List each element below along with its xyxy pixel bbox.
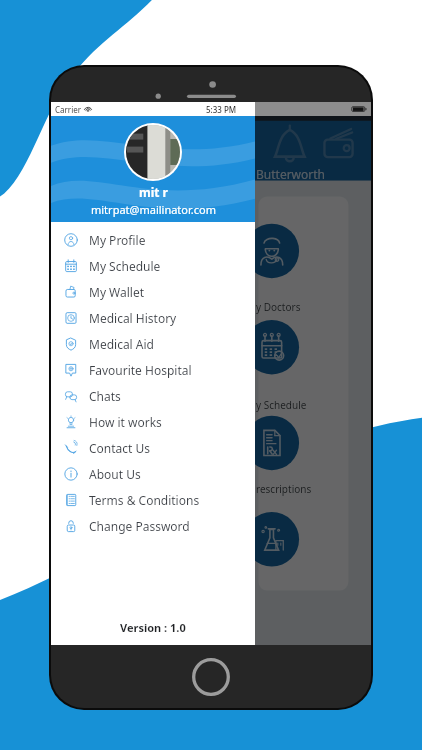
button[interactable]: Profile photo [126,125,180,179]
staticText: y Schedule [256,398,307,412]
staticText: Terms & Conditions [89,492,200,508]
button[interactable]: My Schedule [51,253,255,279]
button[interactable]: How it works [51,409,255,435]
staticText: How it works [89,414,162,430]
button[interactable]: Terms & Conditions [51,487,255,513]
staticText: Chats [89,388,121,404]
staticText: My Profile [89,232,146,248]
button[interactable]: About Us [51,461,255,487]
staticText: My Wallet [89,284,145,300]
button[interactable]: My Profile [51,227,255,253]
staticText: mit r [139,184,168,200]
staticText: y Doctors [256,300,301,314]
button[interactable]: Chats [51,383,255,409]
button[interactable]: Change Password [51,513,255,539]
staticText: rescriptions [256,482,312,496]
staticText: Medical History [89,310,177,326]
staticText: Contact Us [89,440,151,456]
staticText: mitrpat@mailinator.com [91,202,216,217]
staticText: Butterworth [256,166,326,182]
button[interactable]: My Wallet [51,279,255,305]
staticText: About Us [89,466,141,482]
staticText: My Schedule [89,258,161,274]
staticText: Version : 1.0 [120,620,186,635]
button[interactable]: Contact Us [51,435,255,461]
button[interactable]: Favourite Hospital [51,357,255,383]
staticText: 5:33 PM [206,104,237,115]
staticText: Favourite Hospital [89,362,192,378]
staticText: Carrier [55,104,82,115]
button[interactable]: Close navigation drawer [255,116,371,645]
button[interactable]: Medical Aid [51,331,255,357]
staticText: Change Password [89,518,190,534]
staticText: Medical Aid [89,336,154,352]
button[interactable]: Medical History [51,305,255,331]
